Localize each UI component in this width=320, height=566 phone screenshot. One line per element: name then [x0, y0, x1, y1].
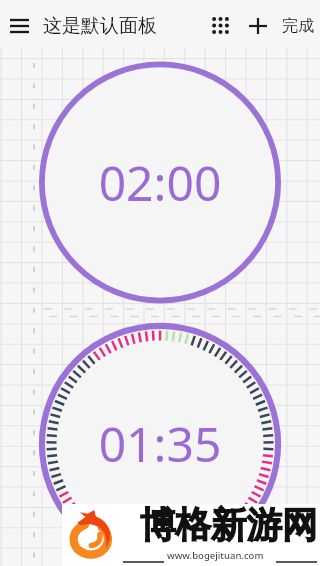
staticText: www.bogejituan.com — [167, 549, 264, 562]
staticText: 完成 — [282, 16, 314, 36]
button[interactable]: Menu — [0, 2, 39, 49]
staticText: 01:35 — [0, 411, 320, 476]
staticText: 这是默认面板 — [43, 14, 157, 38]
staticText: 02:00 — [0, 150, 320, 215]
button[interactable]: Apps — [203, 2, 237, 49]
button[interactable]: 完成 — [270, 2, 320, 49]
staticText: 博格新游网 — [140, 503, 318, 548]
button[interactable]: 这是默认面板 — [43, 2, 157, 49]
button[interactable]: Add — [240, 2, 276, 49]
